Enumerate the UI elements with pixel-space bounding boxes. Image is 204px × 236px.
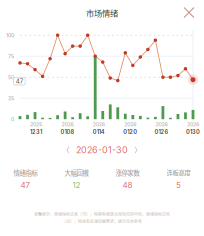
staticText: 0 <box>11 116 14 122</box>
staticText: 50 <box>8 74 14 80</box>
staticText: 2026 <box>61 121 73 127</box>
staticText: 2026-01-30 <box>76 145 128 155</box>
staticText: 大幅回撤 <box>64 168 88 177</box>
button[interactable]: Close <box>0 0 204 236</box>
staticText: 48 <box>122 180 132 190</box>
staticText: 涨停家数 <box>115 168 139 177</box>
staticText: 25 <box>8 95 14 101</box>
staticText: 12 <box>72 180 80 190</box>
button[interactable]: 连板高度 <box>153 167 204 191</box>
staticText: 2026 <box>93 121 105 127</box>
button[interactable]: 情绪指标 <box>0 167 51 191</box>
button[interactable]: 涨停家数 <box>102 167 153 191</box>
staticText: 温馨提示：情绪指标过高（75），短期有释放兑现效应的风险；情绪指标过低 <box>34 211 170 217</box>
button[interactable]: 大幅回撤 <box>51 167 102 191</box>
staticText: 0126 <box>155 128 169 135</box>
staticText: 情绪指标 <box>13 168 37 177</box>
staticText: 75 <box>8 53 14 59</box>
staticText: 0108 <box>60 128 74 135</box>
staticText: 0120 <box>123 128 137 135</box>
staticText: 0114 <box>93 128 105 135</box>
staticText: 1231 <box>30 128 42 135</box>
staticText: 0130 <box>186 128 200 135</box>
staticText: 5 <box>176 180 181 190</box>
staticText: 2026 <box>156 121 168 127</box>
button[interactable]: Previous day <box>60 144 76 156</box>
staticText: 47 <box>20 180 30 190</box>
staticText: 连板高度 <box>166 168 190 177</box>
staticText: 2025 <box>30 121 42 127</box>
button[interactable]: Next day <box>128 144 144 156</box>
staticText: 100 <box>6 32 14 38</box>
staticText: 市场情绪 <box>86 7 118 19</box>
staticText: （25），短线有反弹回暖需求；提示仅供参考 <box>62 218 142 224</box>
staticText: 2026 <box>187 121 199 127</box>
staticText: 47 <box>16 77 23 85</box>
staticText: 2026 <box>124 121 136 127</box>
